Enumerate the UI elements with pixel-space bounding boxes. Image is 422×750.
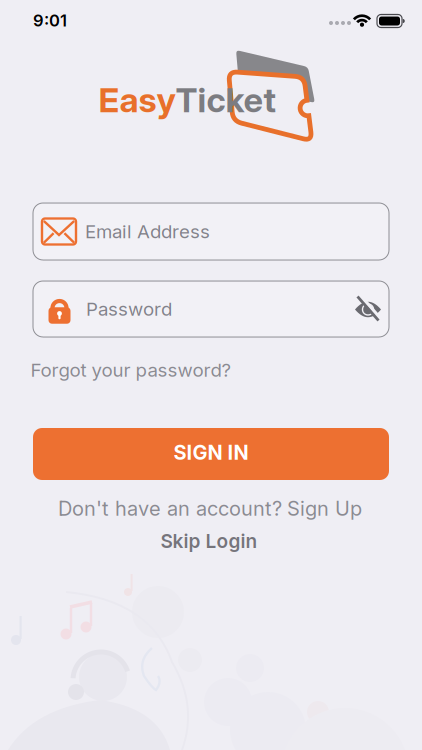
button[interactable]: Password [33,281,389,337]
staticText: 9:01 [33,10,67,30]
staticText: Skip Login [160,529,257,553]
staticText: Easy [98,79,175,120]
staticText: Email Address [85,220,210,243]
button[interactable]: Email Address [33,203,389,260]
button[interactable]: Show password [352,294,384,324]
button[interactable]: Sign Up [287,496,362,521]
button[interactable]: Forgot your password? [30,359,231,381]
staticText: Password [86,298,172,320]
staticText: Sign Up [287,496,362,521]
staticText: Don't have an account? [58,496,282,521]
button[interactable]: Skip Login [160,529,257,553]
staticText: SIGN IN [173,440,248,465]
button[interactable]: SIGN IN [33,428,389,480]
staticText: Ticket [175,79,276,120]
staticText: Forgot your password? [30,359,231,381]
